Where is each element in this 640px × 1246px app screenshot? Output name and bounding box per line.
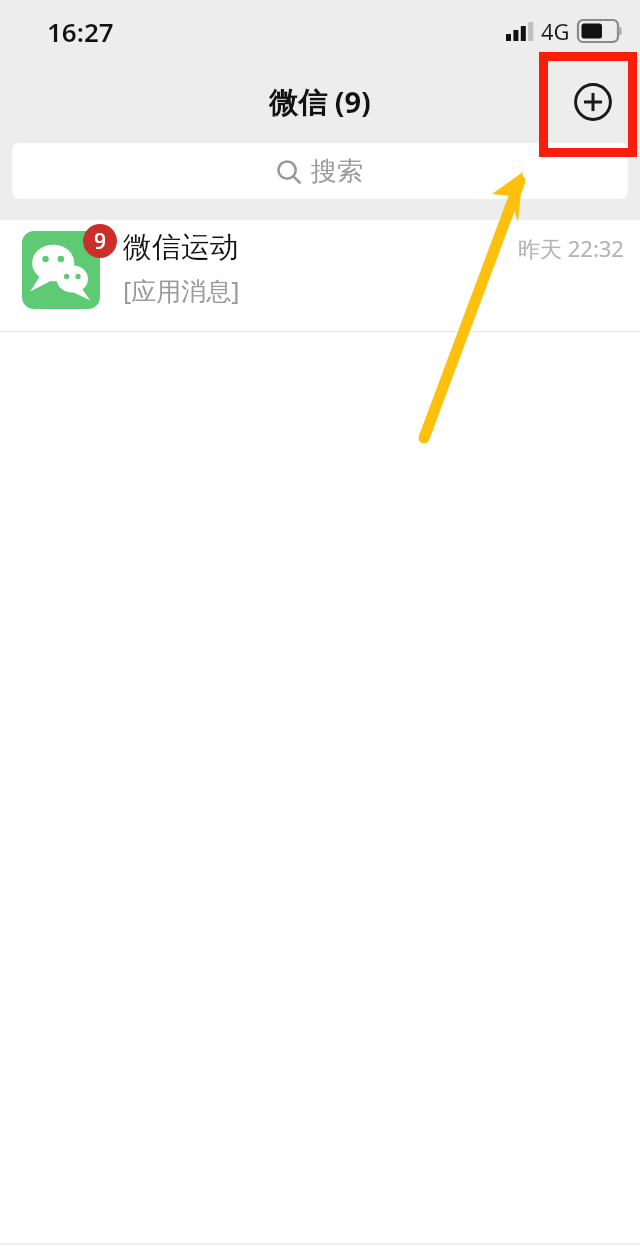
staticText: 微信运动 — [123, 229, 239, 266]
staticText: 搜索 — [311, 155, 363, 188]
staticText: 4G — [541, 16, 570, 46]
staticText: 16:27 — [47, 14, 114, 49]
button[interactable]: 9 — [0, 220, 640, 331]
staticText: 昨天 22:32 — [518, 233, 624, 263]
button[interactable]: Add — [571, 80, 615, 124]
staticText: [应用消息] — [123, 273, 240, 307]
button[interactable]: 搜索 — [12, 143, 628, 199]
staticText: 9 — [94, 227, 107, 256]
staticText: 微信 (9) — [269, 82, 371, 122]
